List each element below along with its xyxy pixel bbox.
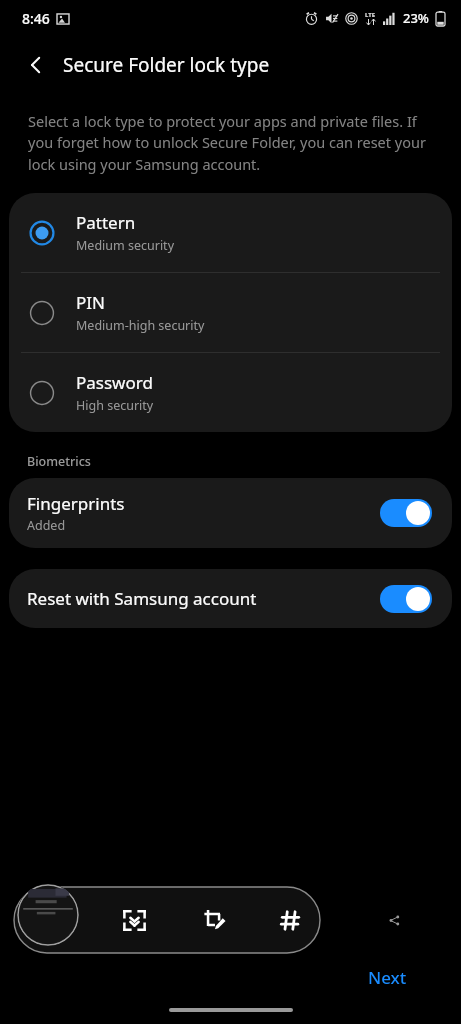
button[interactable]: Back xyxy=(14,43,58,87)
staticText: Next xyxy=(368,966,407,989)
staticText: 23% xyxy=(403,9,429,27)
button[interactable]: Password xyxy=(9,353,452,432)
staticText: Secure Folder lock type xyxy=(63,52,270,78)
button[interactable]: Toggle xyxy=(380,585,432,613)
staticText: High security xyxy=(76,397,154,414)
button[interactable]: Pattern xyxy=(9,193,452,272)
staticText: Pattern xyxy=(76,211,136,234)
button[interactable]: Share xyxy=(382,908,406,932)
button[interactable]: Crop and edit xyxy=(192,898,236,942)
staticText: 8:46 xyxy=(22,9,50,28)
staticText: Medium-high security xyxy=(76,317,205,334)
button[interactable]: Screenshot preview xyxy=(17,884,79,946)
staticText: Password xyxy=(76,371,153,394)
button[interactable]: Toggle xyxy=(380,499,432,527)
staticText: LTE xyxy=(365,11,376,19)
staticText: PIN xyxy=(76,291,105,314)
staticText: Reset with Samsung account xyxy=(27,587,380,610)
button[interactable]: PIN xyxy=(9,273,452,352)
staticText: Added xyxy=(27,517,66,534)
button[interactable]: Next xyxy=(358,960,417,995)
staticText: Biometrics xyxy=(27,453,91,470)
button[interactable]: Reset with Samsung account xyxy=(9,569,452,628)
button[interactable]: Add tag xyxy=(268,898,312,942)
button[interactable]: Scroll capture xyxy=(112,898,156,942)
button[interactable]: Fingerprints xyxy=(9,478,452,548)
staticText: Fingerprints xyxy=(27,492,125,515)
staticText: Select a lock type to protect your apps … xyxy=(28,111,433,175)
staticText: Medium security xyxy=(76,237,175,254)
